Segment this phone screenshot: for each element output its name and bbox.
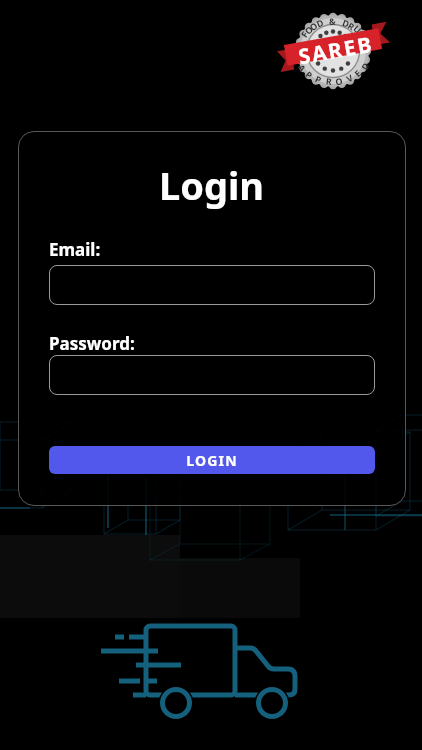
staticText: R xyxy=(347,19,357,31)
staticText: O xyxy=(307,19,319,31)
staticText: SAREB xyxy=(296,30,376,71)
staticText: G xyxy=(356,28,368,39)
staticText xyxy=(324,16,329,26)
staticText: U xyxy=(352,22,364,34)
staticText: P xyxy=(304,68,315,80)
staticText: V xyxy=(344,71,354,83)
staticText: & xyxy=(329,15,336,25)
staticText: O xyxy=(334,74,344,86)
button[interactable]: LOGIN xyxy=(49,446,375,474)
staticText: LOGIN xyxy=(186,451,238,470)
staticText: D xyxy=(358,60,370,71)
staticText: D xyxy=(314,16,325,28)
staticText: D xyxy=(341,16,351,28)
staticText xyxy=(337,15,342,25)
button[interactable] xyxy=(49,355,375,395)
staticText: Login xyxy=(159,159,265,211)
staticText: A xyxy=(297,62,309,73)
staticText: P xyxy=(314,72,324,84)
staticText: F xyxy=(298,29,309,38)
staticText: Password: xyxy=(49,332,135,355)
staticText: Email: xyxy=(49,238,101,261)
staticText: E xyxy=(351,66,363,78)
staticText: O xyxy=(302,23,314,35)
button[interactable] xyxy=(49,265,375,305)
staticText: R xyxy=(325,75,333,85)
